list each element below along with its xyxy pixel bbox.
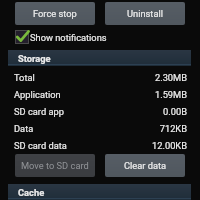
button[interactable]: Total (0, 69, 200, 86)
staticText: 1.59MB (0, 89, 187, 100)
button[interactable]: Application (0, 86, 200, 103)
staticText: 12.00KB (0, 140, 187, 151)
staticText: 0.00B (0, 106, 187, 117)
button[interactable]: Move to SD card (15, 154, 95, 177)
staticText: SD card data (14, 140, 67, 151)
staticText: 712KB (0, 123, 187, 134)
staticText: Uninstall (127, 8, 163, 19)
staticText: Move to SD card (21, 160, 89, 171)
button[interactable]: Show notifications (0, 29, 200, 45)
staticText: 2.30MB (0, 72, 187, 83)
staticText: Cache (18, 187, 45, 198)
button[interactable]: Clear data (105, 154, 185, 177)
button[interactable]: Storage (8, 50, 191, 66)
button[interactable]: Uninstall (105, 2, 185, 25)
button[interactable]: SD card data (0, 137, 200, 154)
staticText: Storage (18, 53, 51, 64)
staticText: Application (14, 89, 61, 100)
staticText: Show notifications (30, 32, 107, 43)
staticText: Force stop (33, 8, 77, 19)
button[interactable]: Force stop (15, 2, 95, 25)
staticText: SD card app (14, 106, 64, 117)
staticText: Data (14, 123, 34, 134)
staticText: Clear data (124, 160, 167, 171)
button[interactable]: Data (0, 120, 200, 137)
staticText: Total (14, 72, 35, 83)
button[interactable]: SD card app (0, 103, 200, 120)
button[interactable]: Cache (8, 184, 191, 200)
